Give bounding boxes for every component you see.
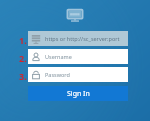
button[interactable]: Password — [28, 67, 128, 82]
staticText: Username — [45, 53, 72, 60]
button[interactable]: Username — [28, 49, 128, 64]
staticText: 1. — [19, 34, 27, 46]
staticText: https or http://sc_server:port — [45, 35, 120, 42]
button[interactable]: Sign In — [28, 86, 128, 101]
staticText: 3. — [19, 70, 27, 82]
staticText: Sign In — [67, 89, 90, 99]
staticText: 2. — [19, 52, 27, 64]
button[interactable]: Server address — [28, 31, 128, 46]
staticText: Password — [45, 71, 70, 78]
